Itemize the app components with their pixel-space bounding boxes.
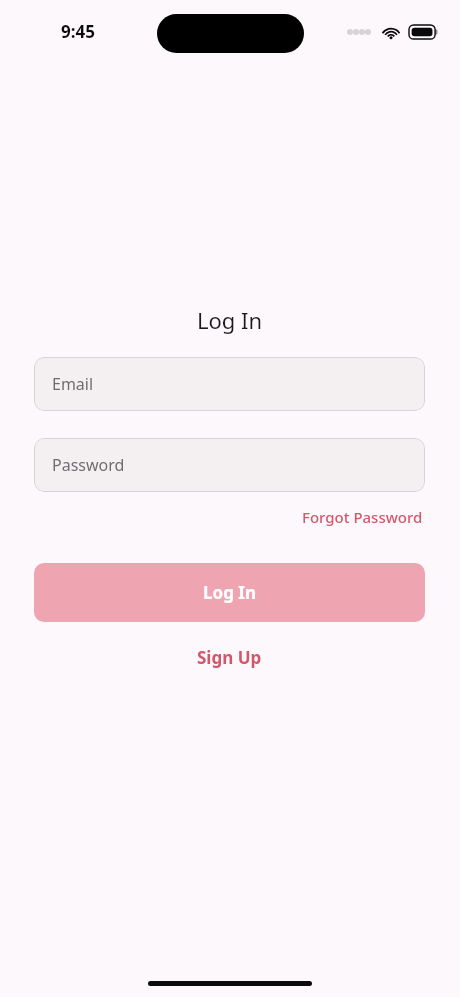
staticText: Forgot Password	[302, 507, 423, 527]
button[interactable]: Log In	[34, 563, 425, 622]
staticText: 9:45	[61, 20, 95, 43]
staticText: Sign Up	[197, 646, 262, 669]
button[interactable]: Password	[34, 438, 425, 492]
button[interactable]: Email	[34, 357, 425, 411]
staticText: Password	[52, 454, 125, 476]
staticText: Log In	[203, 581, 256, 604]
staticText: Email	[52, 373, 94, 395]
staticText: Log In	[34, 305, 425, 335]
button[interactable]: Sign Up	[193, 644, 266, 671]
button[interactable]: Forgot Password	[300, 505, 425, 529]
